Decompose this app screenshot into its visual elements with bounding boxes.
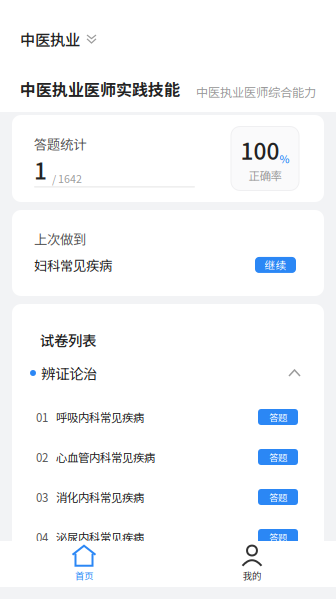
staticText: 02 <box>36 449 48 465</box>
staticText: 继续 <box>264 257 286 273</box>
staticText: 首页 <box>75 569 93 582</box>
staticText: 答题 <box>269 450 287 464</box>
staticText: 答题 <box>269 490 287 504</box>
button[interactable]: 继续 <box>255 257 296 273</box>
staticText: 妇科常见疾病 <box>34 255 112 275</box>
staticText: 01 <box>36 409 48 425</box>
button[interactable]: 我的 <box>168 546 336 582</box>
staticText: 中医执业医师实践技能 <box>20 77 180 101</box>
button[interactable]: 03 <box>12 477 324 517</box>
staticText: 03 <box>36 489 48 505</box>
staticText: 答题 <box>269 530 287 544</box>
staticText: 上次做到 <box>34 229 86 248</box>
staticText: 04 <box>36 529 48 545</box>
staticText: 中医执业 <box>20 28 80 50</box>
staticText: 泌尿内科常见疾病 <box>56 529 144 545</box>
staticText: 答题 <box>269 410 287 424</box>
staticText: 辨证论治 <box>41 363 97 383</box>
button[interactable]: 01 <box>12 397 324 437</box>
staticText: / 1642 <box>52 171 82 186</box>
button[interactable]: 首页 <box>0 546 168 582</box>
staticText: 答题统计 <box>34 134 86 153</box>
staticText: 我的 <box>243 569 261 582</box>
staticText: 1 <box>34 153 47 186</box>
staticText: 试卷列表 <box>40 330 96 350</box>
staticText: 呼吸内科常见疾病 <box>56 409 144 425</box>
staticText: 消化内科常见疾病 <box>56 489 144 505</box>
staticText: % <box>279 151 289 166</box>
button[interactable]: 02 <box>12 437 324 477</box>
button[interactable]: 04 <box>12 517 324 557</box>
staticText: 心血管内科常见疾病 <box>56 449 155 465</box>
staticText: 100 <box>240 133 279 166</box>
staticText: 正确率 <box>248 167 281 184</box>
button[interactable]: 辨证论治 <box>12 358 324 388</box>
staticText: 中医执业医师综合能力 <box>196 83 316 101</box>
